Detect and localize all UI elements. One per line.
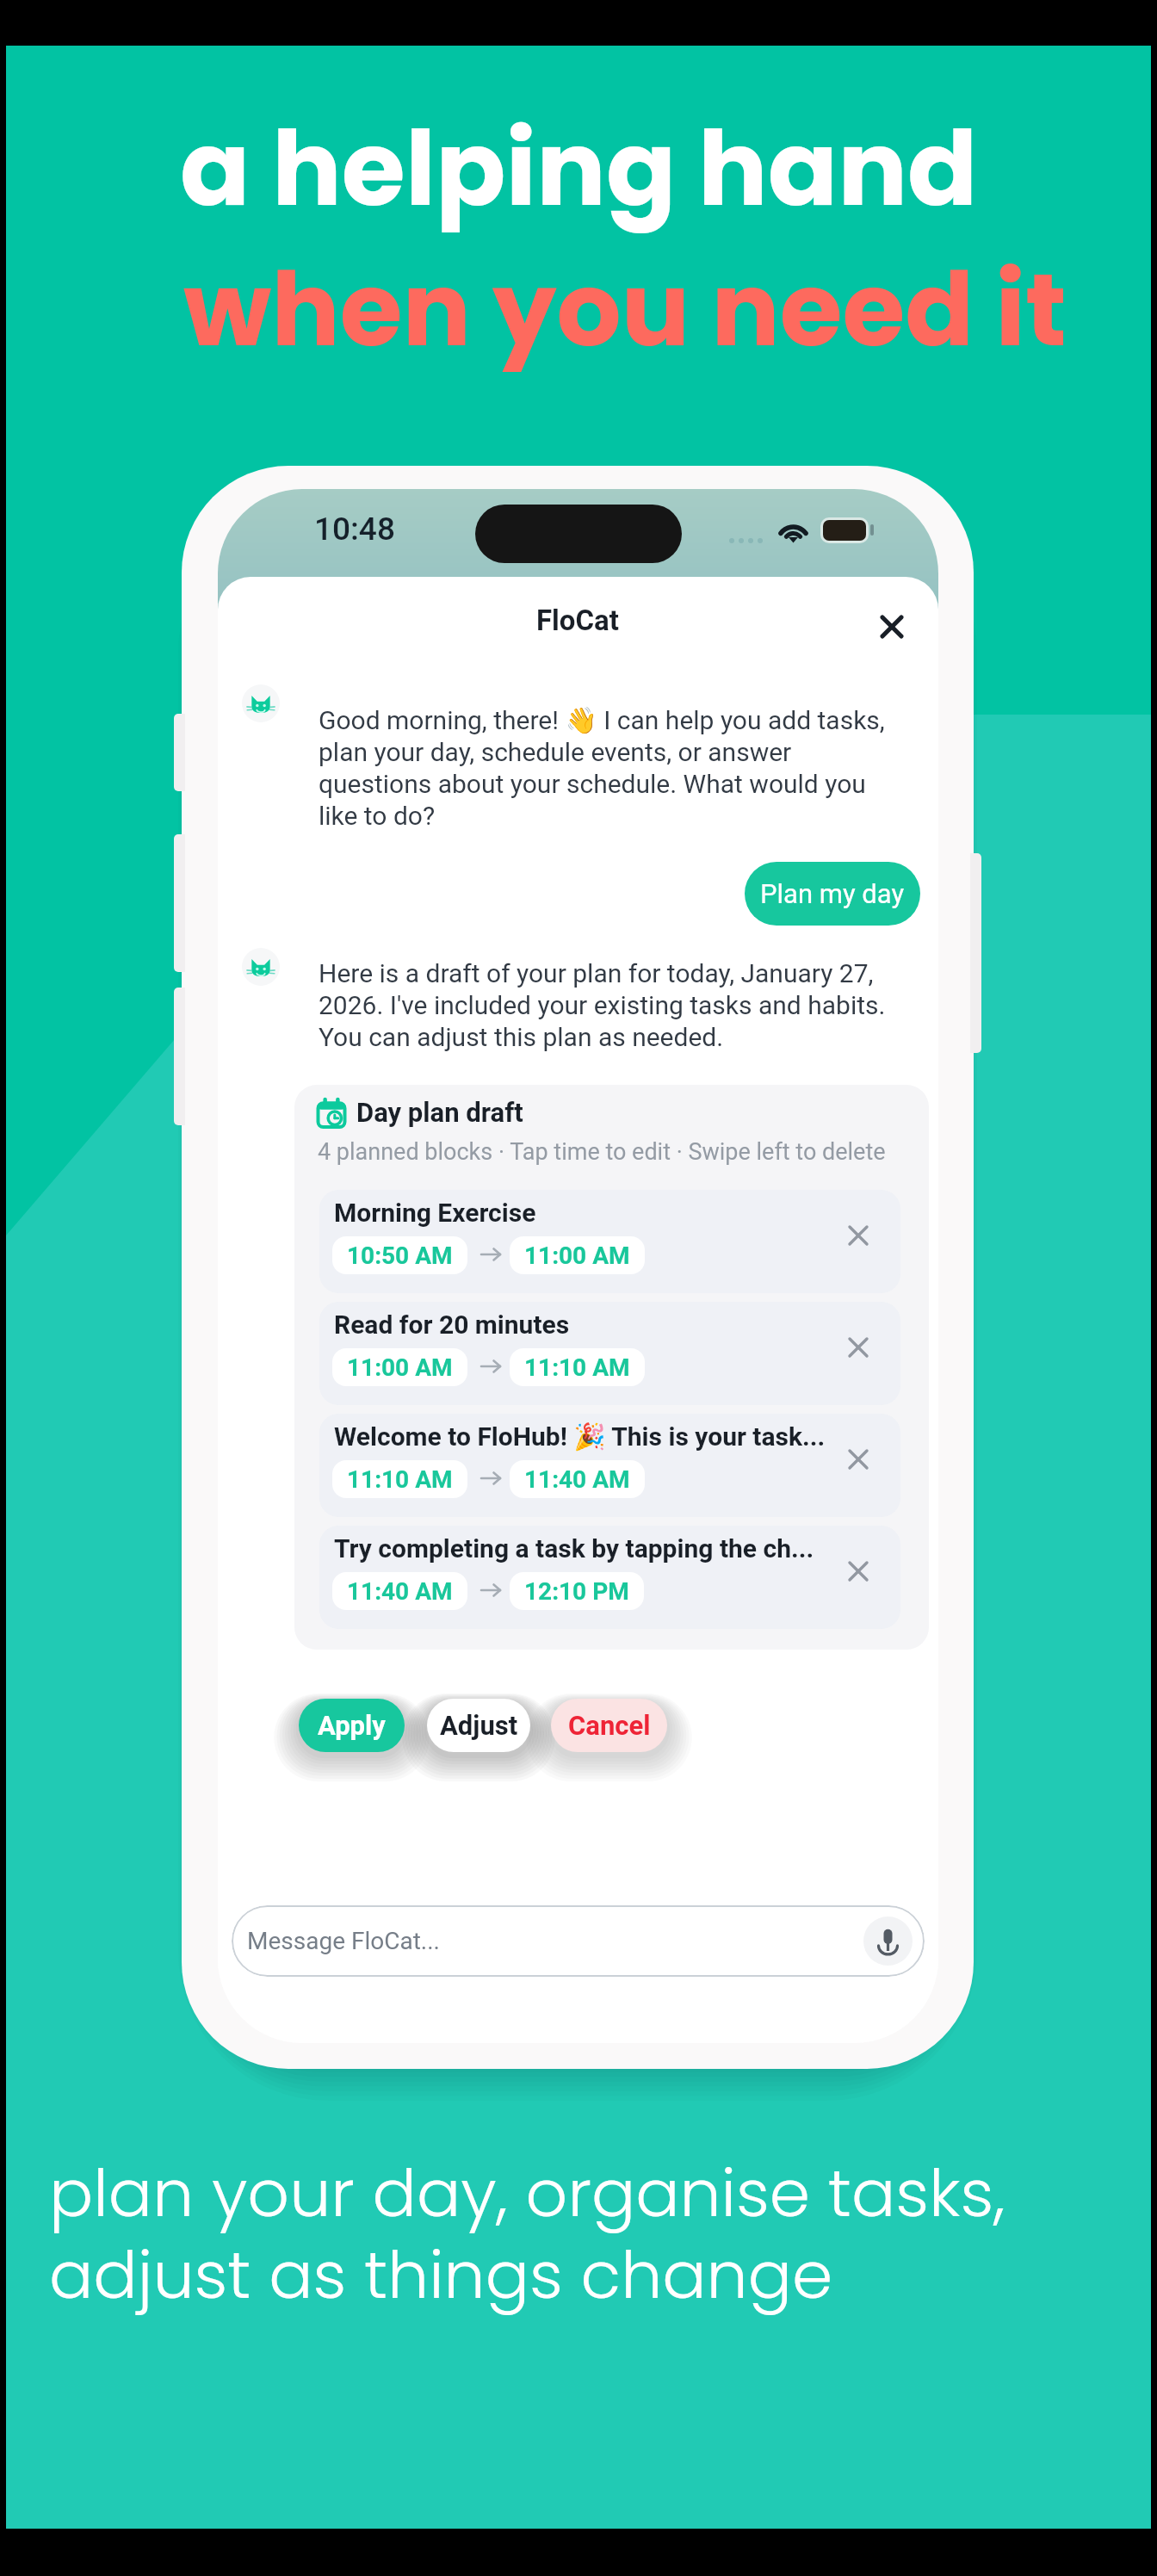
staticText: a helping hand [180, 96, 978, 241]
button[interactable]: 10:50 AM [332, 1236, 467, 1274]
staticText: plan your day, organise tasks, adjust as… [49, 2147, 1005, 2321]
staticText: Apply [318, 1710, 386, 1741]
staticText: Cancel [568, 1710, 651, 1741]
button[interactable]: Message FloCat... [232, 1905, 925, 1977]
staticText: when you need it [183, 238, 1067, 381]
staticText: 11:10 AM [524, 1353, 630, 1382]
button[interactable]: Close [869, 604, 915, 650]
button[interactable]: 11:10 AM [332, 1460, 467, 1498]
button[interactable]: Remove block [839, 1552, 877, 1590]
button[interactable]: 11:40 AM [332, 1572, 467, 1610]
staticText: 11:00 AM [347, 1353, 453, 1382]
button[interactable]: 12:10 PM [510, 1572, 644, 1610]
button[interactable]: Morning Exercise [319, 1190, 900, 1293]
staticText: Read for 20 minutes [334, 1310, 842, 1340]
button[interactable]: Read for 20 minutes [319, 1302, 900, 1405]
button[interactable]: Try completing a task by tapping the ch.… [319, 1526, 900, 1629]
staticText: Morning Exercise [334, 1198, 842, 1228]
button[interactable]: 11:00 AM [332, 1348, 467, 1386]
staticText: 11:40 AM [347, 1577, 453, 1606]
staticText: 4 planned blocks · Tap time to edit · Sw… [318, 1138, 886, 1166]
staticText: Here is a draft of your plan for today, … [319, 958, 900, 1053]
staticText: Plan my day [760, 878, 905, 909]
button[interactable]: 11:10 AM [510, 1348, 645, 1386]
button[interactable]: Welcome to FloHub! 🎉 This is your task..… [319, 1414, 900, 1517]
button[interactable]: Cancel [551, 1699, 667, 1752]
button[interactable]: Plan my day [745, 862, 920, 926]
button[interactable]: Voice input [863, 1917, 913, 1966]
staticText: 11:10 AM [347, 1465, 453, 1494]
button[interactable]: Remove block [839, 1217, 877, 1254]
button[interactable]: Remove block [839, 1328, 877, 1366]
staticText: 11:40 AM [524, 1465, 630, 1494]
staticText: 11:00 AM [524, 1242, 630, 1270]
button[interactable]: Remove block [839, 1440, 877, 1478]
button[interactable]: Apply [299, 1699, 405, 1752]
staticText: Day plan draft [356, 1097, 523, 1128]
button[interactable]: 11:00 AM [510, 1236, 645, 1274]
button[interactable]: Adjust [427, 1699, 530, 1752]
staticText: 12:10 PM [524, 1577, 629, 1606]
staticText: Message FloCat... [247, 1927, 440, 1955]
staticText: Welcome to FloHub! 🎉 This is your task..… [334, 1421, 842, 1452]
staticText: Try completing a task by tapping the ch.… [334, 1533, 842, 1564]
staticText: Adjust [440, 1710, 518, 1741]
staticText: FloCat [536, 604, 619, 637]
staticText: 10:48 [314, 511, 395, 548]
button[interactable]: 11:40 AM [510, 1460, 645, 1498]
staticText: Good morning, there! 👋 I can help you ad… [319, 705, 900, 832]
staticText: 10:50 AM [347, 1242, 453, 1270]
